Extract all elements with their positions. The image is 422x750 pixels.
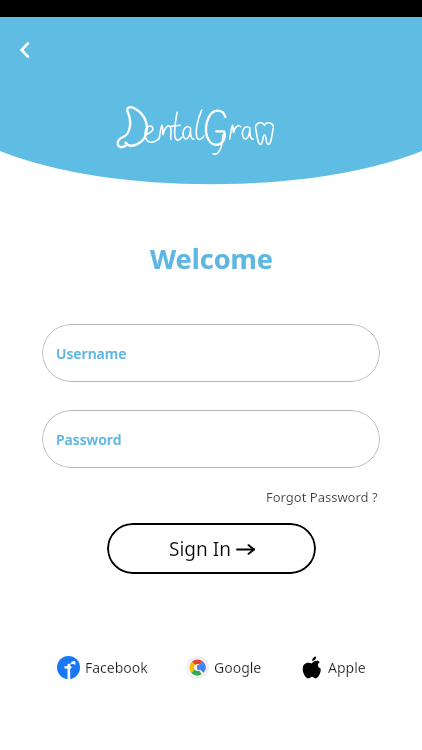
button[interactable]: Google (184, 653, 264, 682)
staticText: Apple (328, 658, 366, 677)
staticText: Google (214, 658, 262, 677)
button[interactable]: Facebook (55, 653, 150, 682)
button[interactable]: Back (6, 30, 46, 70)
staticText: Welcome (150, 240, 273, 277)
button[interactable]: Password (42, 410, 380, 468)
staticText: Sign In (169, 536, 231, 562)
button[interactable]: Sign In (107, 523, 316, 574)
staticText: Forgot Password ? (266, 488, 378, 506)
button[interactable]: Username (42, 324, 380, 382)
staticText: Username (56, 344, 127, 363)
button[interactable]: Forgot Password ? (264, 486, 380, 508)
button[interactable]: Apple (298, 653, 368, 682)
staticText: Password (56, 430, 122, 449)
staticText: Facebook (85, 658, 148, 677)
